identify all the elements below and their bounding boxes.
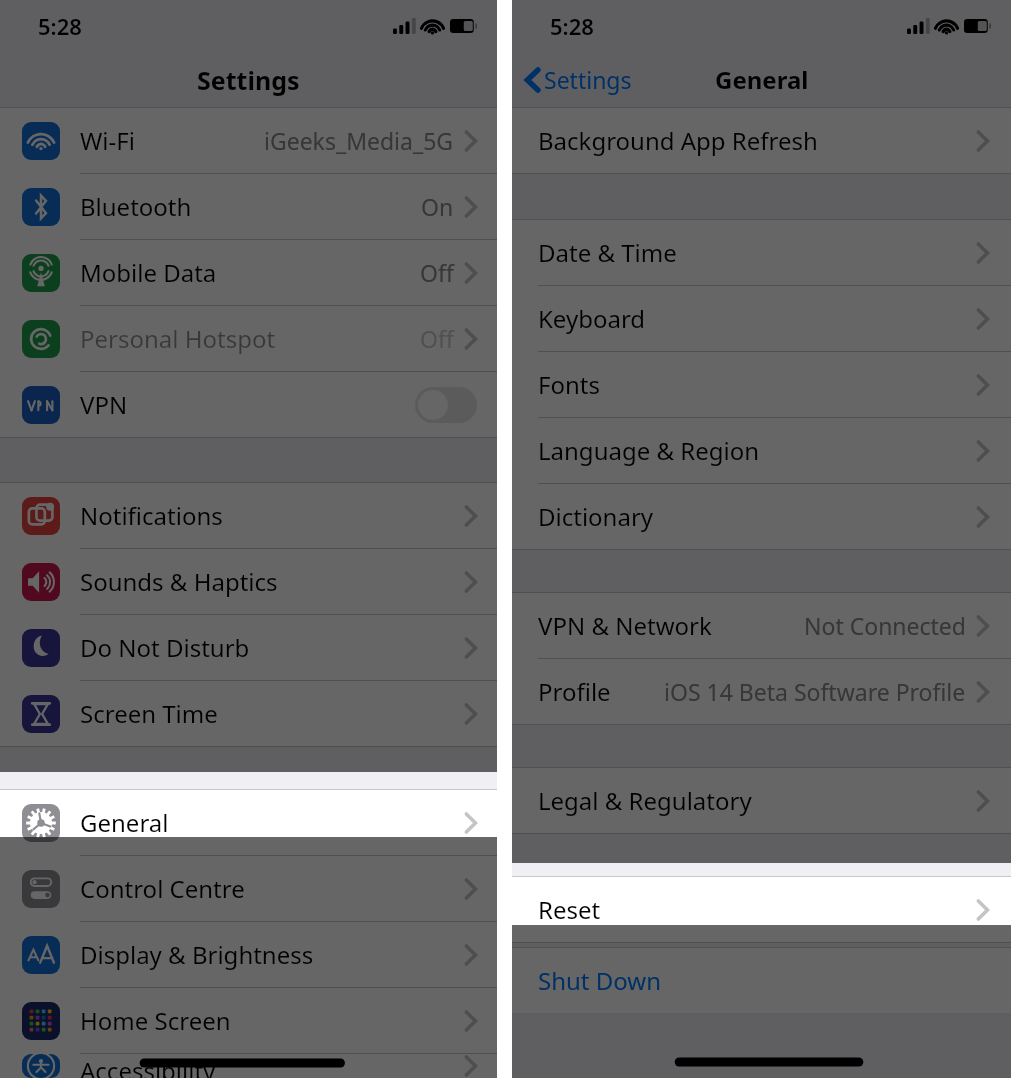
staticText: iGeeks_Media_5G: [264, 125, 454, 156]
staticText: Shut Down: [538, 964, 661, 997]
staticText: Accessibility: [80, 1054, 216, 1078]
staticText: Wi-Fi: [80, 124, 135, 157]
button[interactable]: Profile: [512, 659, 1011, 724]
staticText: Language & Region: [538, 434, 760, 467]
staticText: Settings: [197, 63, 300, 97]
button[interactable]: Home Screen: [0, 988, 497, 1054]
button[interactable]: Fonts: [512, 352, 1011, 418]
button[interactable]: VPN & Network: [512, 593, 1011, 659]
staticText: Display & Brightness: [80, 938, 314, 971]
button[interactable]: Date & Time: [512, 220, 1011, 286]
staticText: Mobile Data: [80, 256, 217, 289]
button[interactable]: Language & Region: [512, 418, 1011, 484]
staticText: 5:28: [550, 11, 594, 41]
staticText: On: [421, 191, 454, 222]
button[interactable]: Legal & Regulatory: [512, 768, 1011, 833]
button[interactable]: Wi-Fi: [0, 108, 497, 174]
button[interactable]: Control Centre: [0, 856, 497, 922]
staticText: Legal & Regulatory: [538, 784, 752, 817]
staticText: Background App Refresh: [538, 124, 818, 157]
staticText: VPN & Network: [538, 609, 712, 642]
button[interactable]: Personal Hotspot: [0, 306, 497, 372]
staticText: Sounds & Haptics: [80, 565, 278, 598]
staticText: Dictionary: [538, 500, 654, 533]
staticText: Profile: [538, 675, 611, 708]
staticText: Control Centre: [80, 872, 245, 905]
staticText: Reset: [538, 893, 601, 926]
staticText: Screen Time: [80, 697, 218, 730]
button[interactable]: Background App Refresh: [512, 108, 1011, 173]
staticText: General: [715, 63, 809, 96]
staticText: Off: [420, 323, 454, 354]
button[interactable]: Display & Brightness: [0, 922, 497, 988]
staticText: Fonts: [538, 368, 600, 401]
staticText: Personal Hotspot: [80, 322, 276, 355]
button[interactable]: Reset: [512, 877, 1011, 942]
staticText: Keyboard: [538, 302, 646, 335]
staticText: Bluetooth: [80, 190, 192, 223]
button[interactable]: Do Not Disturb: [0, 615, 497, 681]
staticText: iOS 14 Beta Software Profile: [664, 676, 966, 707]
staticText: Notifications: [80, 499, 223, 532]
staticText: General: [80, 806, 169, 839]
staticText: Not Connected: [804, 610, 966, 641]
button[interactable]: Keyboard: [512, 286, 1011, 352]
staticText: Do Not Disturb: [80, 631, 250, 664]
button[interactable]: VPN: [0, 372, 497, 437]
button[interactable]: Sounds & Haptics: [0, 549, 497, 615]
staticText: Date & Time: [538, 236, 677, 269]
staticText: VPN: [80, 388, 128, 421]
button[interactable]: Settings: [520, 58, 638, 101]
button[interactable]: Dictionary: [512, 484, 1011, 549]
button[interactable]: Notifications: [0, 483, 497, 549]
staticText: Settings: [544, 64, 632, 95]
button[interactable]: Screen Time: [0, 681, 497, 746]
button[interactable]: Bluetooth: [0, 174, 497, 240]
button[interactable]: Shut Down: [512, 948, 1011, 1013]
button[interactable]: VPN toggle: [415, 387, 477, 423]
button[interactable]: General: [0, 790, 497, 856]
button[interactable]: Mobile Data: [0, 240, 497, 306]
staticText: Off: [420, 257, 454, 288]
button[interactable]: Accessibility: [0, 1054, 497, 1078]
staticText: Home Screen: [80, 1004, 231, 1037]
staticText: 5:28: [38, 11, 82, 41]
